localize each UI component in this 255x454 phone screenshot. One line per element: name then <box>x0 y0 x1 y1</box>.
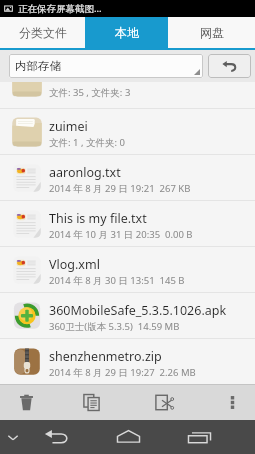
staticText: 网盘 <box>200 25 224 40</box>
button[interactable]: Copy <box>52 385 130 420</box>
staticText: 2014 年 8 月 29 日 19:27 2.26 MB <box>49 366 196 379</box>
staticText: This is my file.txt <box>49 210 147 227</box>
staticText: 分类文件 <box>19 25 67 40</box>
button[interactable]: Delete <box>0 385 52 420</box>
staticText: zuimei <box>49 118 88 135</box>
button[interactable]: shenzhenmetro.zip <box>0 339 255 384</box>
button[interactable]: Cut <box>130 385 196 420</box>
staticText: aaronlog.txt <box>49 164 121 181</box>
staticText: 本地 <box>115 25 139 40</box>
button[interactable]: Recents <box>170 420 228 454</box>
staticText: 内部存储 <box>15 59 61 73</box>
staticText: 360卫士(版本 5.3.5) 14.59 MB <box>49 320 180 333</box>
button[interactable]: 内部存储 <box>9 54 203 78</box>
staticText: 2014 年 10 月 31 日 20:35 0.00 B <box>49 228 193 241</box>
button[interactable]: Back <box>208 54 251 78</box>
staticText: 文件: 35 , 文件夹: 3 <box>49 86 131 99</box>
button[interactable]: 分类文件 <box>0 17 85 48</box>
staticText: Vlog.xml <box>49 256 100 273</box>
staticText: 2014 年 8 月 29 日 19:21 267 KB <box>49 182 191 195</box>
staticText: 文件: 1 , 文件夹: 0 <box>49 136 125 149</box>
button[interactable]: More options <box>209 385 255 420</box>
button[interactable]: Hide keyboard <box>0 420 26 454</box>
staticText: 360MobileSafe_5.3.5.1026.apk <box>49 302 227 319</box>
button[interactable]: Vlog.xml <box>0 247 255 292</box>
button[interactable]: This is my file.txt <box>0 201 255 246</box>
button[interactable]: Back <box>26 420 86 454</box>
button[interactable]: Download <box>0 82 255 104</box>
staticText: 正在保存屏幕截图... <box>18 2 102 15</box>
button[interactable]: Home <box>86 420 170 454</box>
staticText: 2014 年 8 月 30 日 13:51 145 B <box>49 274 185 287</box>
button[interactable]: zuimei <box>0 109 255 154</box>
button[interactable]: 网盘 <box>168 17 255 48</box>
button[interactable]: 360MobileSafe_5.3.5.1026.apk <box>0 293 255 338</box>
button[interactable]: 本地 <box>85 17 168 48</box>
staticText: shenzhenmetro.zip <box>49 348 162 365</box>
button[interactable]: aaronlog.txt <box>0 155 255 200</box>
